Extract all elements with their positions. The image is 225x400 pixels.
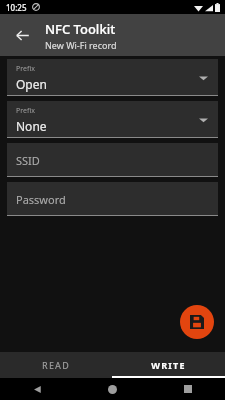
staticText: NFC Toolkit [45, 20, 116, 38]
staticText: Password [16, 192, 66, 207]
staticText: SSID [16, 153, 40, 168]
button[interactable]: Save [180, 305, 214, 339]
button[interactable]: Prefix [7, 101, 218, 138]
button[interactable]: Home [75, 378, 150, 400]
button[interactable]: Password [7, 182, 218, 216]
button[interactable]: Recent apps [150, 378, 225, 400]
button[interactable]: Back [8, 21, 36, 49]
staticText: Prefix [16, 64, 35, 74]
button[interactable]: Prefix [7, 59, 218, 96]
button[interactable]: READ [0, 352, 112, 378]
staticText: READ [42, 359, 70, 371]
staticText: Open [16, 76, 47, 92]
staticText: WRITE [151, 359, 186, 371]
staticText: None [16, 118, 47, 134]
staticText: Prefix [16, 106, 35, 116]
staticText: 10:25 [6, 2, 27, 13]
button[interactable]: Back [0, 378, 75, 400]
staticText: New Wi-Fi record [45, 39, 117, 51]
button[interactable]: WRITE [112, 352, 225, 378]
button[interactable]: SSID [7, 143, 218, 177]
